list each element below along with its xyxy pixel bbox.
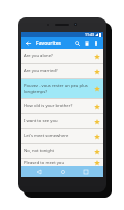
button[interactable]: Favourite (92, 84, 101, 93)
button[interactable]: Home (57, 166, 68, 177)
button[interactable]: Back (33, 166, 44, 177)
staticText: Favourites (36, 40, 73, 47)
button[interactable]: More options (91, 39, 100, 48)
button[interactable]: Favourite (92, 117, 101, 126)
button[interactable]: How old is your brother? (21, 99, 103, 113)
button[interactable]: Favourite (92, 159, 101, 166)
button[interactable]: Back (24, 39, 33, 48)
button[interactable]: Are you married? (21, 64, 103, 78)
button[interactable]: Let's meet somewhere (21, 129, 103, 143)
button[interactable]: Favourite (92, 52, 101, 61)
staticText: Are you alone? (24, 53, 90, 59)
staticText: Pouvez - vous rester un peu plus longtem… (24, 83, 90, 95)
button[interactable]: Recent apps (80, 166, 91, 177)
button[interactable]: Favourite (92, 132, 101, 141)
staticText: I want to see you (24, 118, 90, 124)
button[interactable]: Favourite (92, 147, 101, 156)
button[interactable]: I want to see you (21, 114, 103, 128)
staticText: Let's meet somewhere (24, 133, 90, 139)
button[interactable]: Pleased to meet you (21, 159, 103, 166)
button[interactable]: Pouvez - vous rester un peu plus longtem… (21, 79, 103, 98)
button[interactable]: Delete (82, 39, 91, 48)
staticText: Pleased to meet you (24, 160, 90, 166)
staticText: No, not tonight (24, 148, 90, 154)
button[interactable]: Favourite (92, 102, 101, 111)
button[interactable]: No, not tonight (21, 144, 103, 158)
staticText: How old is your brother? (24, 103, 90, 109)
button[interactable]: Are you alone? (21, 49, 103, 63)
button[interactable]: Favourite (92, 67, 101, 76)
staticText: Are you married? (24, 68, 90, 74)
staticText: 11:43 (85, 32, 94, 37)
button[interactable]: Search (73, 39, 82, 48)
